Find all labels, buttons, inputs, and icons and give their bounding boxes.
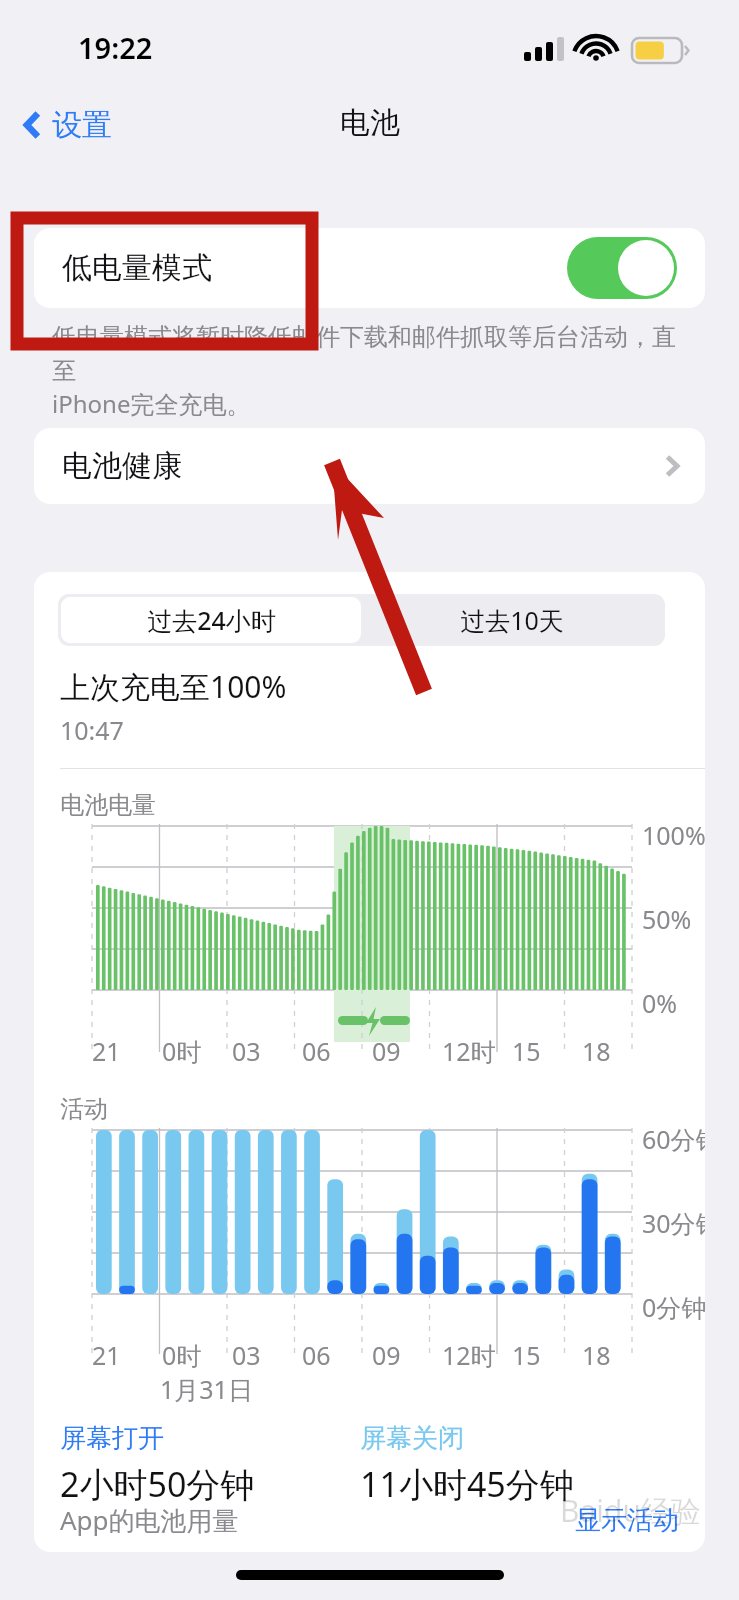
staticText: 15 xyxy=(512,1338,541,1372)
button[interactable]: 过去10天 xyxy=(361,597,662,643)
staticText: 11小时45分钟 xyxy=(360,1461,574,1507)
staticText: 15 xyxy=(512,1034,541,1068)
staticText: 09 xyxy=(372,1034,401,1068)
staticText: 2小时50分钟 xyxy=(60,1461,255,1507)
button[interactable]: 显示活动 xyxy=(575,1504,679,1537)
staticText: 21 xyxy=(92,1034,121,1068)
button[interactable]: 过去24小时 xyxy=(61,597,361,643)
staticText: iPhone完全充电。 xyxy=(52,387,251,420)
staticText: 0时 xyxy=(162,1034,202,1068)
staticText: 06 xyxy=(302,1338,331,1372)
staticText: 电池健康 xyxy=(62,447,182,485)
staticText: 03 xyxy=(232,1034,261,1068)
staticText: 设置 xyxy=(52,106,112,144)
button[interactable]: 设置 xyxy=(14,100,120,150)
staticText: 09 xyxy=(372,1338,401,1372)
staticText: Baidu经验 xyxy=(560,1490,702,1531)
staticText: 1月31日 xyxy=(160,1372,253,1406)
staticText: 19:22 xyxy=(78,28,153,67)
staticText: 上次充电至100% xyxy=(60,666,287,707)
staticText: 100% xyxy=(642,818,705,852)
staticText: 0时 xyxy=(162,1338,202,1372)
staticText: 12时 xyxy=(442,1034,496,1068)
staticText: 10:47 xyxy=(60,713,124,747)
staticText: 屏幕打开 xyxy=(60,1422,164,1455)
staticText: 18 xyxy=(582,1034,611,1068)
button[interactable]: 电池健康 xyxy=(34,428,705,504)
staticText: 电池电量 xyxy=(60,790,156,820)
staticText: 低电量模式 xyxy=(62,249,212,287)
staticText: 过去24小时 xyxy=(147,603,276,637)
staticText: 03 xyxy=(232,1338,261,1372)
staticText: 60分钟 xyxy=(642,1122,705,1156)
button[interactable]: 低电量模式 xyxy=(34,228,705,308)
staticText: 18 xyxy=(582,1338,611,1372)
staticText: 0分钟 xyxy=(642,1290,705,1324)
staticText: 50% xyxy=(642,902,692,936)
staticText: 12时 xyxy=(442,1338,496,1372)
staticText: 30分钟 xyxy=(642,1206,705,1240)
staticText: 屏幕关闭 xyxy=(360,1422,464,1455)
staticText: 0% xyxy=(642,986,678,1020)
staticText: 活动 xyxy=(60,1094,108,1124)
staticText: 06 xyxy=(302,1034,331,1068)
staticText: 过去10天 xyxy=(460,603,564,637)
staticText: 21 xyxy=(92,1338,121,1372)
staticText: 低电量模式将暂时降低邮件下载和邮件抓取等后台活动，直至 xyxy=(52,322,692,387)
button[interactable]: App的电池用量 xyxy=(60,1502,239,1538)
staticText: 电池 xyxy=(340,104,400,142)
